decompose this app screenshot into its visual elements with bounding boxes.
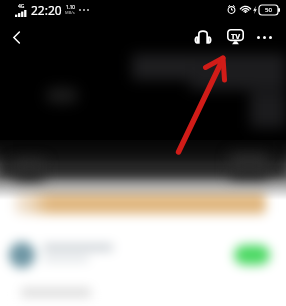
staticText: 4G xyxy=(18,3,25,10)
button[interactable]: Write a comment xyxy=(12,284,192,304)
button[interactable] xyxy=(14,193,266,214)
button[interactable] xyxy=(234,245,270,265)
staticText: TV xyxy=(231,31,241,41)
button[interactable]: Audio mode xyxy=(189,23,217,51)
staticText: 1.10 xyxy=(66,4,75,10)
staticText: 50 xyxy=(265,6,272,14)
button[interactable]: Cast to TV xyxy=(221,23,249,51)
button[interactable]: Follow xyxy=(234,245,270,265)
button[interactable]: Video player xyxy=(0,56,286,174)
button[interactable]: Back xyxy=(1,22,31,52)
button[interactable]: Promotion banner xyxy=(14,193,266,214)
button[interactable]: Author xyxy=(4,238,228,272)
button[interactable]: More options xyxy=(251,24,277,50)
staticText: 22:20 xyxy=(31,2,62,18)
staticText: MB/s xyxy=(65,10,75,15)
